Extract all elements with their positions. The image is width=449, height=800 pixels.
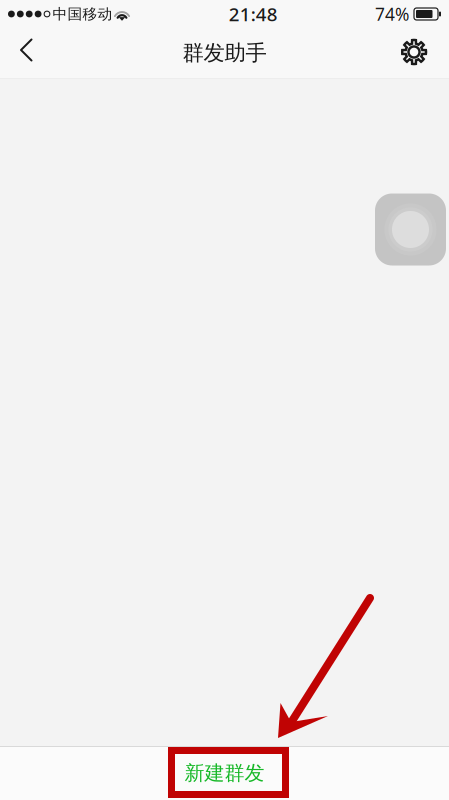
staticText: 74% [375,2,409,25]
button[interactable]: AssistiveTouch [375,193,446,265]
staticText: 群发助手 [182,40,266,66]
button[interactable]: Settings [402,28,444,78]
staticText: 新建群发 [184,761,264,785]
staticText: 21:48 [229,2,278,26]
button[interactable]: Back [5,28,47,78]
button[interactable]: 新建群发 [0,746,449,800]
staticText: 中国移动 [52,5,112,23]
